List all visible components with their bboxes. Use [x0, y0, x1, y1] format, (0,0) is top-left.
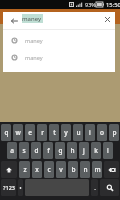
button[interactable]: Backspace: [104, 161, 119, 178]
staticText: u: [76, 128, 81, 137]
staticText: ?123: [3, 184, 15, 191]
button[interactable]: j: [79, 142, 89, 159]
staticText: p: [112, 128, 117, 137]
button[interactable]: t: [49, 124, 59, 141]
button[interactable]: z: [19, 161, 30, 178]
button[interactable]: .: [91, 179, 98, 196]
button[interactable]: u: [73, 124, 83, 141]
staticText: z: [23, 165, 27, 174]
staticText: j: [83, 146, 85, 155]
staticText: l: [107, 146, 109, 155]
button[interactable]: k: [91, 142, 101, 159]
button[interactable]: Back: [6, 12, 23, 29]
staticText: r: [41, 128, 44, 137]
staticText: .: [94, 184, 96, 192]
staticText: y: [64, 128, 68, 137]
staticText: m: [94, 165, 101, 174]
button[interactable]: Clear: [100, 12, 115, 27]
button[interactable]: g: [55, 142, 65, 159]
staticText: maney: [22, 15, 42, 23]
staticText: i: [89, 128, 91, 137]
button[interactable]: h: [67, 142, 77, 159]
staticText: w: [15, 128, 21, 137]
staticText: g: [58, 146, 63, 155]
staticText: n: [83, 165, 88, 174]
button[interactable]: e: [25, 124, 35, 141]
button[interactable]: s: [19, 142, 29, 159]
button[interactable]: i: [85, 124, 95, 141]
button[interactable]: c: [44, 161, 54, 178]
button[interactable]: Search: [100, 179, 119, 196]
button[interactable]: b: [68, 161, 78, 178]
button[interactable]: Emoji: [18, 179, 23, 196]
staticText: f: [47, 146, 50, 155]
button[interactable]: m: [92, 161, 102, 178]
button[interactable]: p: [109, 124, 119, 141]
staticText: 93%: [85, 1, 96, 8]
button[interactable]: w: [13, 124, 23, 141]
staticText: s: [22, 146, 26, 155]
button[interactable]: a: [7, 142, 17, 159]
staticText: k: [94, 146, 98, 155]
staticText: 15:50: [106, 1, 120, 9]
button[interactable]: d: [31, 142, 41, 159]
staticText: o: [100, 128, 104, 137]
button[interactable]: x: [32, 161, 42, 178]
button[interactable]: v: [56, 161, 66, 178]
button[interactable]: f: [43, 142, 53, 159]
staticText: maney: [25, 37, 43, 45]
button[interactable]: maney: [3, 49, 115, 66]
button[interactable]: ?123: [1, 179, 16, 196]
staticText: x: [35, 165, 39, 174]
button[interactable]: y: [61, 124, 71, 141]
button[interactable]: maney: [20, 12, 100, 29]
staticText: maney: [25, 54, 43, 62]
staticText: e: [28, 128, 32, 137]
button[interactable]: q: [1, 124, 11, 141]
button[interactable]: r: [37, 124, 47, 141]
staticText: v: [59, 165, 63, 174]
staticText: q: [4, 128, 9, 137]
button[interactable]: l: [103, 142, 113, 159]
button[interactable]: Shift: [1, 161, 17, 178]
button[interactable]: maney: [3, 32, 115, 49]
button[interactable]: n: [80, 161, 90, 178]
button[interactable]: o: [97, 124, 107, 141]
staticText: a: [10, 146, 14, 155]
staticText: h: [70, 146, 75, 155]
staticText: t: [53, 128, 56, 137]
staticText: c: [47, 165, 51, 174]
staticText: d: [34, 146, 39, 155]
staticText: b: [71, 165, 76, 174]
